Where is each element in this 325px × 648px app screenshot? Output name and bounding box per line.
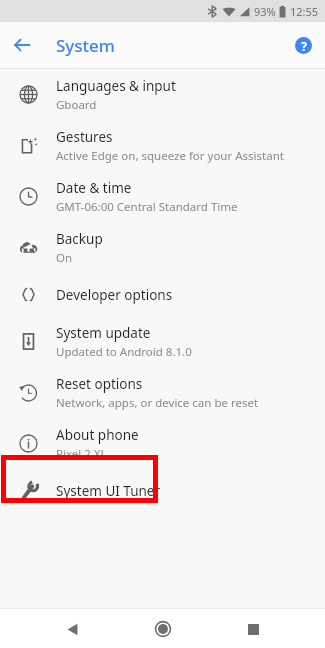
staticText: System	[56, 34, 115, 57]
staticText: Pixel 2 XL	[56, 446, 107, 462]
button[interactable]: Recent apps	[237, 613, 269, 645]
button[interactable]: Gestures	[0, 120, 325, 171]
staticText: Active Edge on, squeeze for your Assista…	[56, 148, 284, 164]
button[interactable]: Home	[147, 613, 179, 645]
button[interactable]: Help	[288, 30, 318, 60]
staticText: 93%	[254, 4, 276, 19]
staticText: About phone	[56, 426, 139, 444]
button[interactable]: Reset options	[0, 367, 325, 418]
button[interactable]: Back	[6, 29, 38, 61]
staticText: 12:55	[290, 4, 319, 19]
staticText: Date & time	[56, 179, 132, 197]
staticText: Developer options	[56, 286, 173, 304]
staticText: Updated to Android 8.1.0	[56, 344, 192, 360]
button[interactable]: Languages & input	[0, 69, 325, 120]
button[interactable]: System UI Tuner	[0, 469, 325, 512]
staticText: ?	[301, 38, 307, 54]
staticText: On	[56, 250, 73, 266]
button[interactable]: About phone	[0, 418, 325, 469]
staticText: Gboard	[56, 97, 97, 113]
staticText: Backup	[56, 230, 103, 248]
staticText: System update	[56, 324, 151, 342]
staticText: Network, apps, or device can be reset	[56, 395, 259, 411]
button[interactable]: Date & time	[0, 171, 325, 222]
staticText: Languages & input	[56, 77, 176, 95]
staticText: Reset options	[56, 375, 143, 393]
button[interactable]: Developer options	[0, 273, 325, 316]
staticText: Gestures	[56, 128, 113, 146]
button[interactable]: Back	[56, 613, 88, 645]
button[interactable]: System update	[0, 316, 325, 367]
button[interactable]: Backup	[0, 222, 325, 273]
staticText: System UI Tuner	[56, 482, 161, 500]
staticText: GMT-06:00 Central Standard Time	[56, 199, 238, 215]
